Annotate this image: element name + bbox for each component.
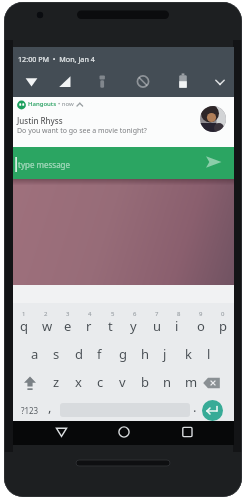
staticText: type message xyxy=(18,159,71,170)
staticText: Justin Rhyss xyxy=(17,115,63,126)
staticText: i xyxy=(175,317,179,335)
staticText: z xyxy=(53,373,60,391)
staticText: p xyxy=(219,317,227,335)
staticText: 5 xyxy=(111,310,115,318)
staticText: 8 xyxy=(177,310,181,318)
staticText: 2 xyxy=(44,310,48,318)
staticText: , xyxy=(48,398,52,416)
staticText: ?123 xyxy=(21,405,39,416)
staticText: • now xyxy=(58,100,74,108)
staticText: 0 xyxy=(221,310,225,318)
staticText: Do you want to go see a movie tonight? xyxy=(17,126,147,136)
staticText: y xyxy=(130,317,137,335)
staticText: h xyxy=(141,345,150,363)
staticText: e xyxy=(64,317,72,335)
button[interactable] xyxy=(46,421,76,445)
staticText: t xyxy=(108,317,113,335)
staticText: 6 xyxy=(133,310,137,318)
button[interactable] xyxy=(109,421,139,445)
staticText: 9 xyxy=(199,310,203,318)
staticText: g xyxy=(119,345,127,363)
staticText: w xyxy=(42,317,53,335)
staticText: 1 xyxy=(22,310,26,318)
staticText: m xyxy=(185,373,198,391)
staticText: 12:00 PM • Mon, Jan 4 xyxy=(18,54,95,64)
staticText: j xyxy=(163,345,167,363)
staticText: n xyxy=(163,373,172,391)
staticText: . xyxy=(193,398,197,416)
staticText: f xyxy=(97,345,102,363)
staticText: Hangouts xyxy=(28,100,57,108)
staticText: l xyxy=(207,345,211,363)
button[interactable] xyxy=(202,400,223,421)
staticText: b xyxy=(141,373,149,391)
staticText: 4 xyxy=(88,310,92,318)
staticText: s xyxy=(53,345,60,363)
staticText: a xyxy=(31,345,39,363)
button[interactable] xyxy=(13,97,234,147)
button[interactable] xyxy=(13,147,234,179)
staticText: d xyxy=(75,345,83,363)
staticText: r xyxy=(86,317,92,335)
staticText: q xyxy=(20,317,28,335)
staticText: x xyxy=(75,373,82,391)
staticText: u xyxy=(153,317,162,335)
button[interactable] xyxy=(172,421,202,445)
staticText: o xyxy=(197,317,205,335)
staticText: k xyxy=(185,345,192,363)
staticText: v xyxy=(119,373,126,391)
staticText: c xyxy=(97,373,104,391)
staticText: 7 xyxy=(155,310,159,318)
staticText: 3 xyxy=(66,310,70,318)
